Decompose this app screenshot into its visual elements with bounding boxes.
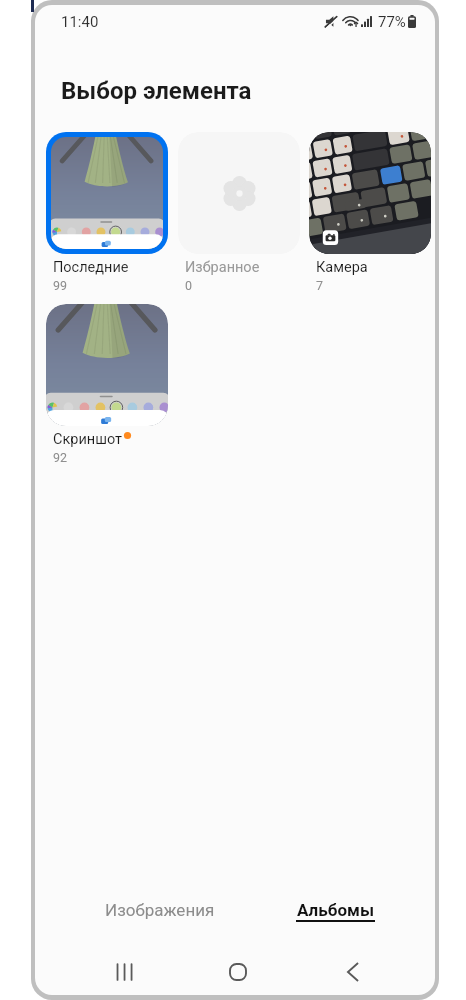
staticText: 0: [185, 278, 193, 293]
button[interactable]: Home: [219, 953, 257, 991]
staticText: Избранное: [185, 259, 260, 276]
staticText: 11:40: [61, 13, 99, 31]
staticText: 7: [316, 278, 324, 293]
staticText: 99: [53, 278, 68, 293]
button[interactable]: Скриншот: [46, 304, 168, 465]
button[interactable]: Изображения: [90, 887, 230, 931]
button[interactable]: Альбомы: [282, 887, 391, 931]
button[interactable]: Камера: [309, 132, 431, 293]
staticText: Последние: [53, 259, 129, 276]
staticText: Камера: [316, 259, 368, 276]
button[interactable]: Последние: [46, 132, 168, 293]
staticText: 77%: [378, 13, 406, 31]
button[interactable]: Избранное: [178, 132, 300, 293]
staticText: Выбор элемента: [61, 77, 252, 105]
staticText: 92: [53, 450, 68, 465]
staticText: Изображения: [105, 900, 215, 920]
staticText: Альбомы: [297, 900, 374, 920]
button[interactable]: Recent apps: [105, 953, 143, 991]
staticText: Скриншот: [53, 431, 122, 448]
button[interactable]: Back: [334, 953, 372, 991]
